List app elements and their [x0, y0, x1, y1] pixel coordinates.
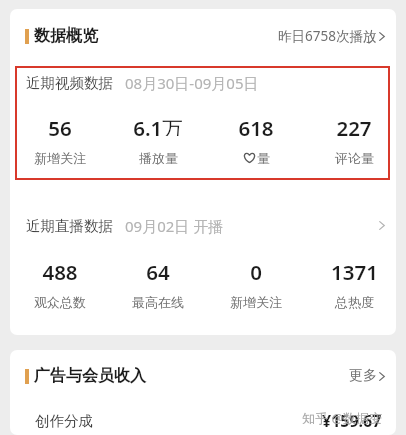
staticText: 近期直播数据 [26, 217, 113, 235]
staticText: 量 [257, 150, 270, 166]
button[interactable]: 创作分成 [10, 402, 396, 435]
staticText: 新增关注 [230, 294, 282, 310]
staticText: 更多 [349, 367, 377, 385]
staticText: 最高在线 [132, 294, 184, 310]
staticText: 09月02日 开播 [125, 216, 224, 236]
button[interactable]: 近期视频数据 [10, 63, 396, 102]
staticText: 56 [48, 114, 72, 136]
staticText: 488 [42, 258, 78, 280]
staticText: 近期视频数据 [26, 74, 113, 92]
staticText: 观众总数 [34, 294, 86, 310]
button[interactable]: 广告与会员收入 [10, 350, 396, 402]
staticText: ¥159.67 [322, 410, 382, 432]
button[interactable]: 数据概览 [10, 9, 396, 63]
staticText: 618 [238, 114, 274, 136]
staticText: 数据概览 [34, 26, 98, 46]
staticText: 新增关注 [34, 150, 86, 166]
staticText: 总热度 [335, 294, 374, 310]
staticText: 64 [146, 258, 170, 280]
staticText: 广告与会员收入 [34, 366, 146, 386]
staticText: 08月30日-09月05日 [125, 73, 259, 93]
staticText: 1371 [331, 258, 378, 280]
staticText: 创作分成 [35, 412, 93, 430]
staticText: 知乎 @数据变 [302, 409, 383, 427]
button[interactable]: 近期直播数据 [10, 206, 396, 245]
staticText: 0 [250, 258, 262, 280]
staticText: 227 [336, 114, 372, 136]
staticText: 6.1万 [133, 114, 183, 136]
staticText: 评论量 [335, 150, 374, 166]
staticText: 播放量 [139, 150, 178, 166]
staticText: 昨日6758次播放 [278, 27, 377, 45]
